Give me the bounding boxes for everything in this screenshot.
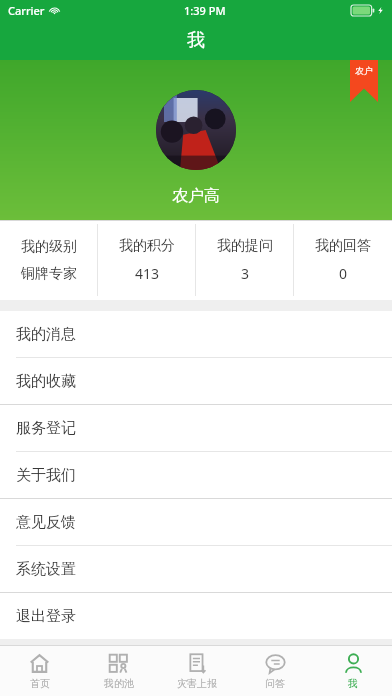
staticText: 3: [241, 264, 250, 283]
button[interactable]: 灾害上报: [158, 646, 236, 696]
button[interactable]: 我的消息: [0, 311, 392, 358]
staticText: 农户高: [172, 186, 220, 206]
button[interactable]: 退出登录: [0, 593, 392, 639]
staticText: 我的收藏: [16, 372, 76, 391]
button[interactable]: 我的收藏: [0, 358, 392, 404]
staticText: 铜牌专家: [21, 265, 77, 283]
other: 农户 badge: [350, 60, 378, 102]
button[interactable]: 我的池: [79, 646, 158, 696]
staticText: 退出登录: [16, 607, 76, 626]
button[interactable]: 我的级别: [0, 220, 98, 300]
staticText: 系统设置: [16, 560, 76, 579]
staticText: 我的消息: [16, 325, 76, 344]
staticText: 我: [348, 677, 358, 690]
staticText: 问答: [265, 677, 285, 690]
staticText: 1:39 PM: [184, 3, 226, 18]
staticText: 服务登记: [16, 419, 76, 438]
staticText: 灾害上报: [177, 677, 217, 690]
staticText: 关于我们: [16, 466, 76, 485]
staticText: 413: [135, 264, 160, 283]
staticText: 首页: [30, 677, 50, 690]
staticText: 我的池: [104, 677, 134, 690]
staticText: 我的提问: [217, 237, 273, 255]
button[interactable]: 我的提问: [196, 220, 294, 300]
staticText: Carrier: [8, 3, 45, 18]
button[interactable]: 我的积分: [98, 220, 196, 300]
button[interactable]: 关于我们: [0, 452, 392, 498]
button[interactable]: 问答: [236, 646, 314, 696]
staticText: 我的级别: [21, 238, 77, 256]
staticText: 我: [187, 29, 205, 52]
button[interactable]: 首页: [0, 646, 79, 696]
button[interactable]: 系统设置: [0, 546, 392, 592]
button[interactable]: [156, 90, 236, 170]
staticText: 意见反馈: [16, 513, 76, 532]
staticText: 我的回答: [315, 237, 371, 255]
staticText: 农户: [352, 65, 376, 76]
button[interactable]: 服务登记: [0, 405, 392, 452]
staticText: 0: [339, 264, 348, 283]
button[interactable]: 我的回答: [294, 220, 392, 300]
button[interactable]: 我: [314, 646, 392, 696]
staticText: 我的积分: [119, 237, 175, 255]
button[interactable]: 意见反馈: [0, 499, 392, 546]
